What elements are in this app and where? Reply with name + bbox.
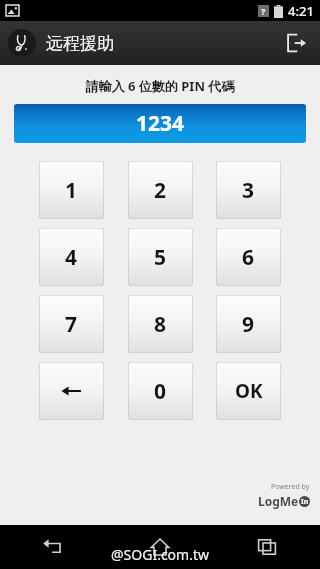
staticText: @SOGI.com.tw xyxy=(111,545,209,564)
button[interactable]: 0 xyxy=(128,362,193,420)
button[interactable]: 2 xyxy=(128,161,193,219)
staticText: 3 xyxy=(242,176,255,205)
staticText: 1234 xyxy=(136,109,185,138)
staticText: OK xyxy=(235,378,263,404)
staticText: 7 xyxy=(65,310,78,339)
staticText: 請輸入 6 位數的 PIN 代碼 xyxy=(0,77,320,95)
button[interactable]: Back xyxy=(0,525,106,569)
button[interactable]: Home xyxy=(106,525,213,569)
button[interactable]: 8 xyxy=(128,295,193,353)
staticText: 2 xyxy=(154,176,167,205)
staticText: 6 xyxy=(242,243,255,272)
staticText: ? xyxy=(261,5,266,17)
staticText: 9 xyxy=(242,310,255,339)
staticText: 4 xyxy=(65,243,78,272)
button[interactable]: 1234 xyxy=(14,104,306,143)
button[interactable]: 5 xyxy=(128,228,193,286)
button[interactable]: 1 xyxy=(39,161,104,219)
button[interactable]: 9 xyxy=(216,295,281,353)
staticText: 远程援助 xyxy=(46,33,114,54)
button[interactable]: 4 xyxy=(39,228,104,286)
button[interactable]: 7 xyxy=(39,295,104,353)
staticText: 5 xyxy=(154,243,167,272)
button[interactable]: Backspace xyxy=(39,362,104,420)
staticText: In xyxy=(301,497,309,507)
staticText: Powered by xyxy=(271,482,310,492)
button[interactable]: Recent apps xyxy=(213,525,320,569)
button[interactable]: 6 xyxy=(216,228,281,286)
staticText: 1 xyxy=(65,176,78,205)
button[interactable]: OK xyxy=(216,362,281,420)
staticText: LogMe xyxy=(258,493,299,509)
button[interactable]: Sign out xyxy=(272,21,320,65)
staticText: 0 xyxy=(154,377,167,406)
staticText: 4:21 xyxy=(288,2,314,20)
button[interactable]: 3 xyxy=(216,161,281,219)
staticText: 8 xyxy=(154,310,167,339)
